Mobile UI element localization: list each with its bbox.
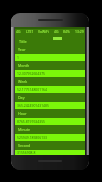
- button[interactable]: Year: [15, 45, 85, 61]
- staticText: 12.307952604375: [17, 71, 46, 76]
- staticText: Year: [18, 47, 26, 52]
- staticText: Week: [18, 79, 28, 84]
- staticText: Hour: [18, 111, 27, 116]
- staticText: 4G: [54, 29, 59, 34]
- staticText: Minute: [18, 127, 30, 132]
- staticText: VoWiFi: [38, 29, 49, 34]
- staticText: 4G: [16, 29, 21, 34]
- staticText: 365.2424901431485: [17, 103, 49, 108]
- staticText: Month: [18, 63, 30, 68]
- button[interactable]: 4G: [15, 27, 85, 155]
- staticText: 13:29: [75, 29, 84, 34]
- staticText: 84%: [63, 29, 70, 34]
- button[interactable]: Week: [15, 77, 85, 93]
- staticText: 525949.185806133: [17, 135, 47, 140]
- staticText: 31556908.8: [17, 150, 36, 155]
- staticText: 8765.8197634355: [17, 119, 46, 124]
- button[interactable]: Minute: [15, 125, 85, 141]
- button[interactable]: Second: [15, 141, 85, 155]
- staticText: LTE1: [26, 29, 34, 34]
- staticText: Second: [18, 143, 31, 148]
- button[interactable]: Day: [15, 93, 85, 109]
- button[interactable]: Month: [15, 61, 85, 77]
- staticText: 52.1775148001164: [17, 87, 47, 92]
- staticText: Title: [19, 39, 27, 44]
- staticText: 1: [17, 55, 19, 60]
- staticText: Day: [18, 95, 25, 100]
- button[interactable]: Hour: [15, 109, 85, 125]
